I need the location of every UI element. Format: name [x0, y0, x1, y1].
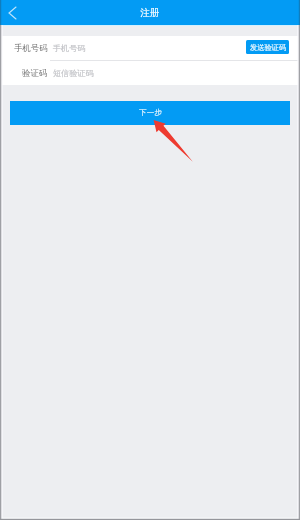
staticText: 验证码 [22, 68, 48, 79]
staticText: 手机号码 [14, 43, 48, 54]
staticText: 手机号码 [53, 43, 86, 53]
button[interactable]: 发送验证码 [246, 40, 289, 54]
staticText: 下一步 [139, 108, 162, 118]
staticText: 发送验证码 [250, 43, 286, 52]
staticText: 短信验证码 [53, 68, 94, 78]
staticText: 注册 [140, 7, 160, 19]
button[interactable]: 下一步 [10, 101, 290, 125]
button[interactable]: 验证码 [0, 61, 300, 85]
button[interactable]: 手机号码 [0, 36, 300, 60]
button[interactable]: Back [0, 0, 25, 25]
